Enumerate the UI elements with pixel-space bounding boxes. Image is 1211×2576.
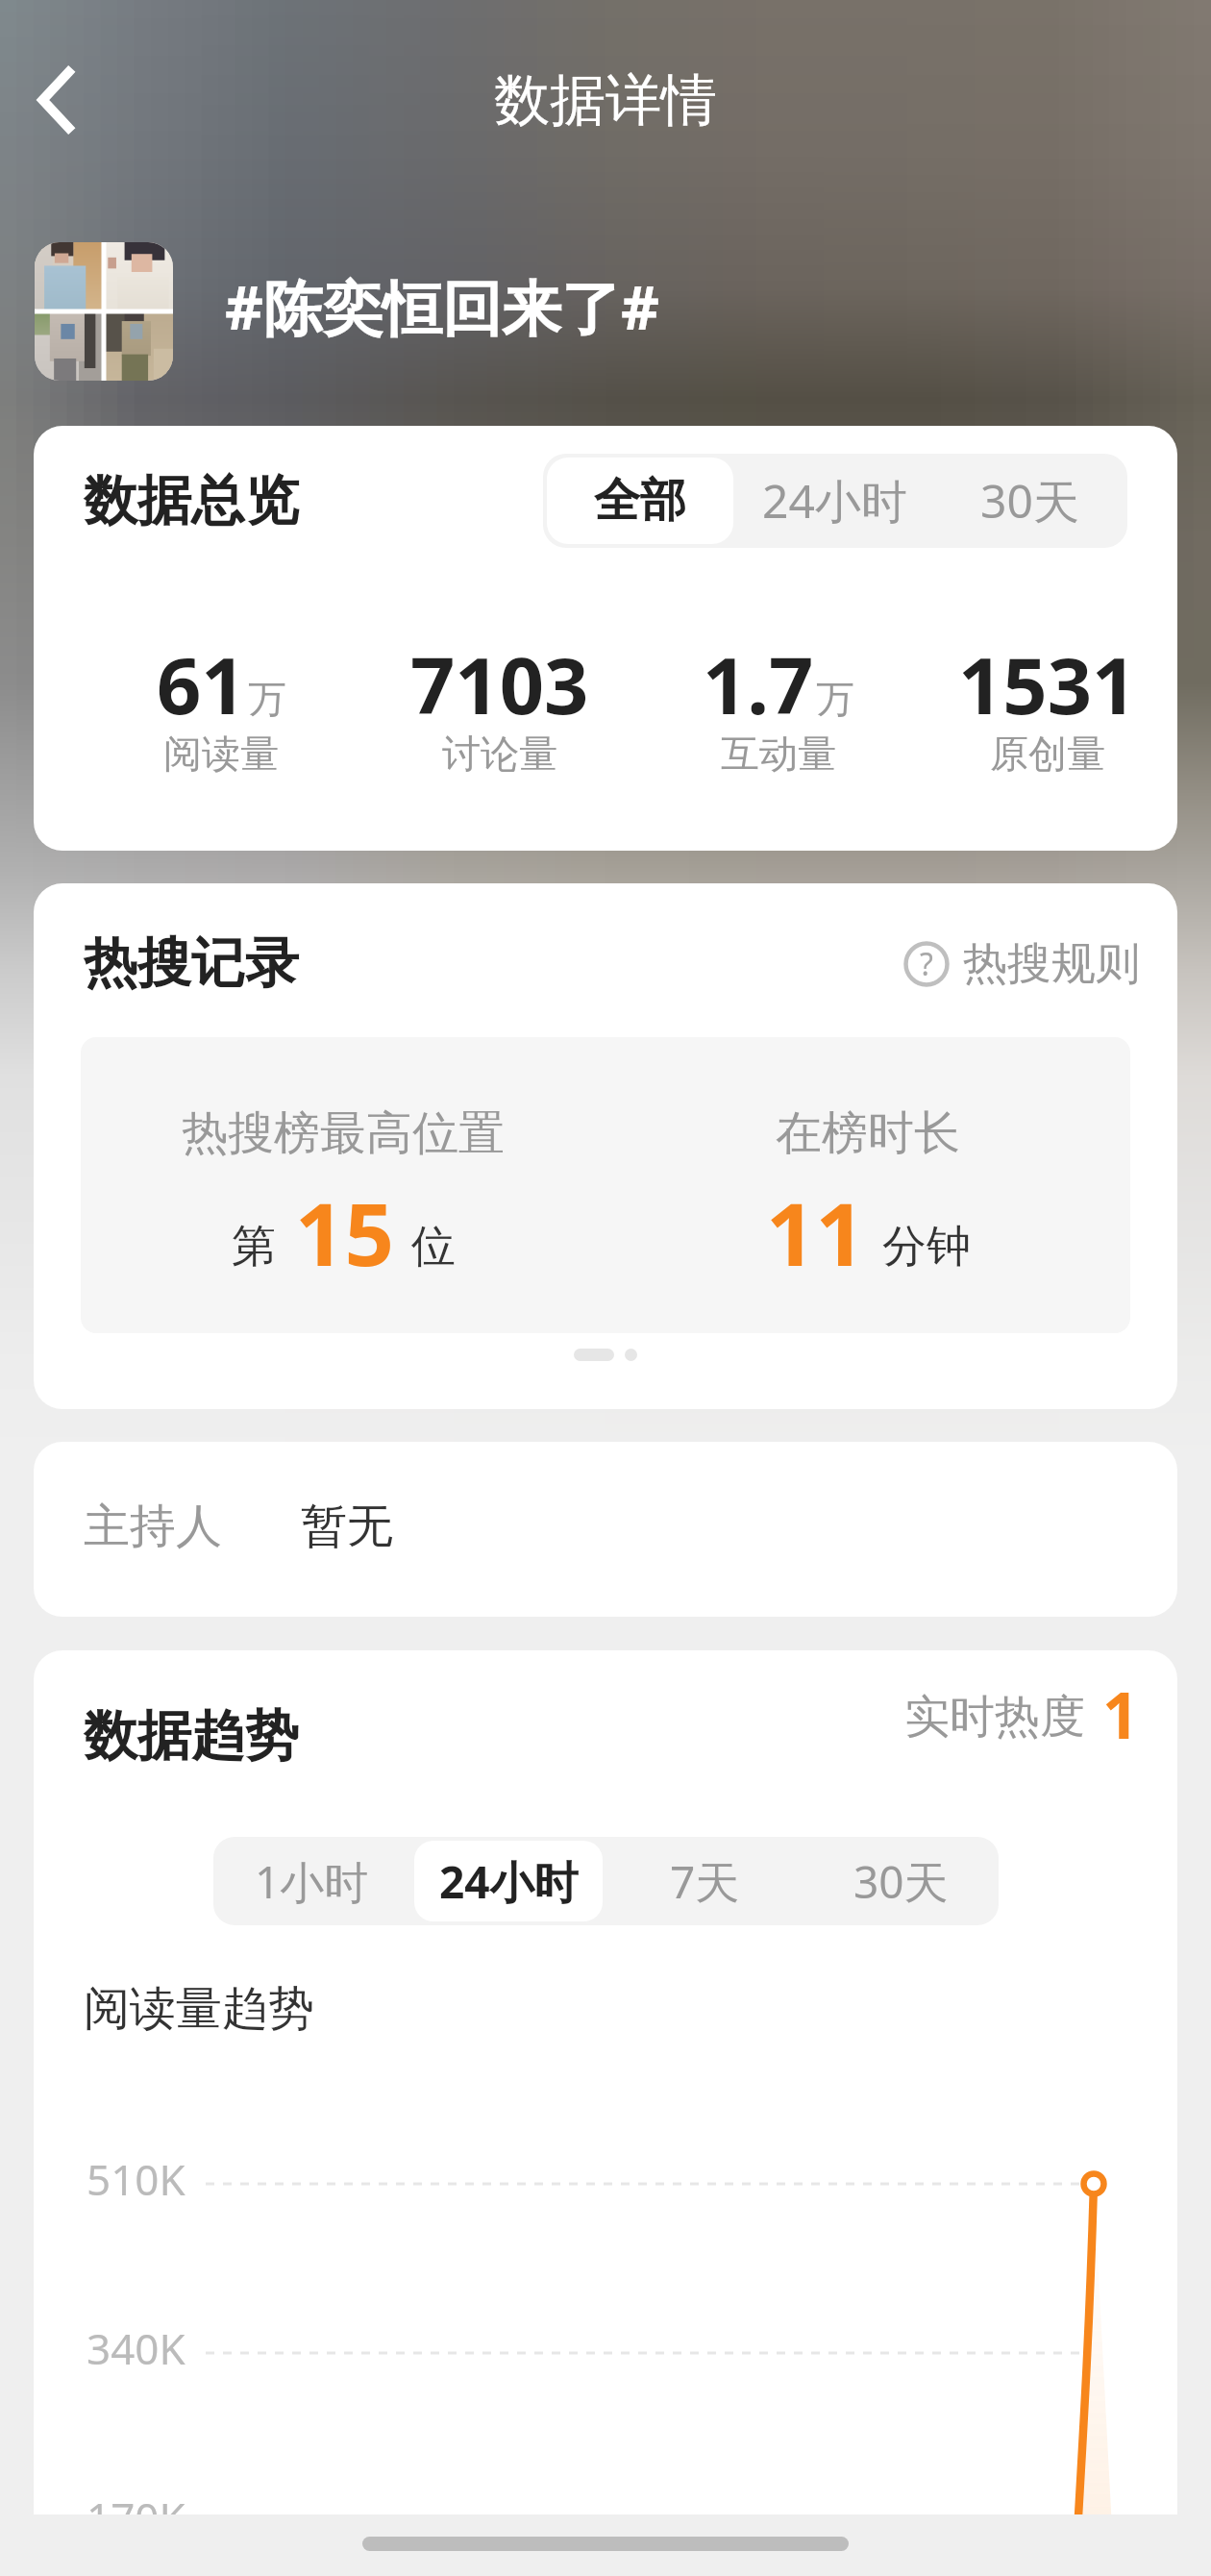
staticText: 24小时 bbox=[762, 469, 907, 533]
staticText: 数据详情 bbox=[494, 65, 717, 136]
staticText: 30天 bbox=[980, 469, 1079, 533]
button[interactable]: 全部 bbox=[547, 458, 733, 544]
staticText: 分钟 bbox=[882, 1219, 971, 1275]
staticText: 热搜榜最高位置 bbox=[182, 1104, 505, 1162]
staticText: 万 bbox=[816, 675, 854, 723]
staticText: 1531 bbox=[958, 631, 1137, 736]
button[interactable]: 24小时 bbox=[414, 1841, 603, 1921]
staticText: 11 bbox=[766, 1174, 865, 1292]
staticText: 位 bbox=[411, 1219, 456, 1275]
button[interactable]: Back bbox=[15, 57, 102, 143]
staticText: 30天 bbox=[853, 1851, 949, 1912]
staticText: 数据总览 bbox=[84, 467, 299, 535]
button[interactable]: 30天 bbox=[803, 1837, 999, 1925]
staticText: 阅读量趋势 bbox=[84, 1980, 314, 2038]
button[interactable]: 7天 bbox=[606, 1837, 803, 1925]
staticText: 1.7 bbox=[703, 631, 814, 736]
staticText: 7天 bbox=[670, 1851, 740, 1912]
staticText: 互动量 bbox=[721, 730, 836, 778]
button[interactable]: Topic cover bbox=[35, 242, 173, 381]
staticText: 在榜时长 bbox=[776, 1104, 960, 1162]
staticText: 340K bbox=[86, 2319, 185, 2377]
staticText: 数据趋势 bbox=[84, 1702, 299, 1771]
staticText: 原创量 bbox=[990, 730, 1105, 778]
staticText: 讨论量 bbox=[442, 730, 557, 778]
button[interactable]: 30天 bbox=[932, 454, 1127, 548]
staticText: 热搜记录 bbox=[84, 929, 299, 998]
staticText: 万 bbox=[248, 675, 286, 723]
staticText: 全部 bbox=[594, 472, 686, 530]
button[interactable]: 1小时 bbox=[213, 1837, 410, 1925]
staticText: 第 bbox=[232, 1219, 276, 1275]
staticText: 主持人 bbox=[84, 1498, 222, 1555]
staticText: ? bbox=[920, 943, 933, 985]
staticText: #陈奕恒回来了# bbox=[225, 266, 660, 348]
staticText: 热搜规则 bbox=[963, 936, 1140, 992]
staticText: 24小时 bbox=[439, 1851, 579, 1912]
staticText: 61 bbox=[157, 631, 246, 736]
staticText: 510K bbox=[86, 2150, 185, 2208]
staticText: 暂无 bbox=[301, 1498, 393, 1555]
staticText: 15 bbox=[295, 1174, 394, 1292]
staticText: 实时热度 bbox=[904, 1689, 1085, 1746]
staticText: 7103 bbox=[410, 631, 589, 736]
button[interactable]: ? bbox=[903, 936, 1140, 992]
staticText: 阅读量 bbox=[163, 730, 279, 778]
staticText: 170K bbox=[86, 2489, 185, 2515]
staticText: 1小时 bbox=[255, 1851, 369, 1912]
staticText: 1 bbox=[1102, 1671, 1139, 1757]
button[interactable]: 24小时 bbox=[737, 454, 932, 548]
